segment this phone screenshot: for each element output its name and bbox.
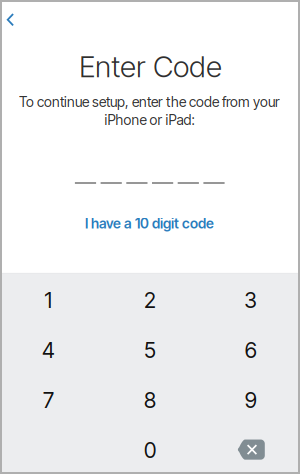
button[interactable]: 2 [101, 276, 199, 324]
button[interactable]: 4 [0, 326, 98, 374]
button[interactable]: 0 [101, 426, 199, 474]
staticText: 8 [144, 387, 156, 413]
staticText: 2 [144, 287, 156, 313]
staticText: To continue setup, enter the code from y… [19, 93, 280, 110]
button[interactable]: 1 [0, 276, 98, 324]
button[interactable]: Back [2, 3, 26, 36]
button[interactable]: 7 [0, 376, 98, 424]
button[interactable]: 3 [201, 276, 300, 324]
button[interactable]: 6 [201, 326, 300, 374]
button[interactable]: 5 [101, 326, 199, 374]
staticText: Enter Code [79, 49, 222, 84]
staticText: 4 [42, 337, 55, 363]
button[interactable]: 8 [101, 376, 199, 424]
staticText: 1 [45, 287, 53, 313]
staticText: 6 [245, 337, 257, 363]
button[interactable]: Delete [202, 425, 300, 474]
button[interactable]: I have a 10 digit code [77, 211, 222, 236]
staticText: iPhone or iPad: [104, 111, 194, 128]
staticText: 5 [144, 337, 156, 363]
staticText: 0 [144, 437, 156, 463]
staticText: 9 [245, 387, 257, 413]
staticText: 3 [244, 287, 257, 313]
staticText: I have a 10 digit code [85, 215, 214, 232]
staticText: 7 [43, 387, 54, 413]
button[interactable]: 9 [201, 376, 300, 424]
